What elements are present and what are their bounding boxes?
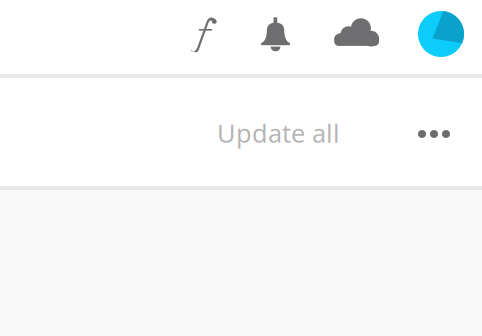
button[interactable]: Account (418, 11, 464, 57)
staticText: Update all (217, 116, 340, 150)
button[interactable]: Update all (217, 116, 340, 150)
button[interactable]: More options (418, 130, 450, 138)
button[interactable]: Sync status (334, 18, 379, 46)
button[interactable]: Formula (190, 17, 216, 53)
button[interactable]: Notifications (261, 17, 290, 51)
